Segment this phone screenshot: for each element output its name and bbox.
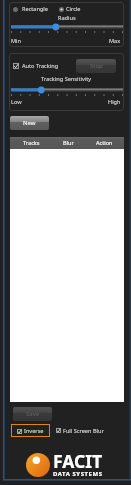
button[interactable]: Full Screen Blur [56, 424, 104, 437]
staticText: Full Screen Blur [63, 427, 104, 435]
button[interactable]: Rectangle [13, 5, 48, 13]
staticText: Action [96, 139, 113, 147]
button[interactable]: Stop [76, 59, 116, 73]
staticText: Min [11, 37, 21, 45]
staticText: New [23, 119, 36, 127]
staticText: Circle [66, 5, 81, 13]
staticText: Rectangle [22, 5, 48, 13]
staticText: Low [11, 98, 22, 106]
staticText: FACIT [53, 449, 103, 473]
button[interactable]: Auto Tracking [13, 61, 59, 70]
staticText: Tracks [23, 139, 40, 147]
button[interactable]: Inverse [11, 424, 50, 437]
staticText: High [108, 98, 121, 106]
staticText: DATA SYSTEMS [53, 470, 103, 478]
staticText: Save [26, 410, 40, 418]
button[interactable]: Save [13, 407, 52, 421]
staticText: Tracking Sensitivity [41, 75, 92, 83]
staticText: Auto Tracking [22, 62, 59, 70]
staticText: Max [109, 37, 121, 45]
button[interactable]: Circle [59, 5, 81, 13]
staticText: Blur [63, 139, 74, 147]
staticText: Inverse [24, 427, 44, 435]
staticText: Stop [90, 62, 103, 70]
other: Facit Data Systems logo [26, 453, 50, 477]
staticText: Radius [58, 14, 76, 22]
button[interactable]: New [10, 116, 49, 130]
